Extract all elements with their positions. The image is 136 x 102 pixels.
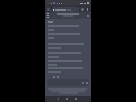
button[interactable] [47,79,89,86]
button[interactable]: Thumbs down [57,76,59,78]
button[interactable]: Menu [47,13,49,18]
button[interactable]: Recents [75,98,77,100]
button[interactable]: Thumbs up [53,76,55,78]
button[interactable]: Incognito [47,8,50,11]
button[interactable] [52,7,79,12]
button[interactable]: Back [57,98,59,100]
button[interactable]: Profile [81,8,84,11]
